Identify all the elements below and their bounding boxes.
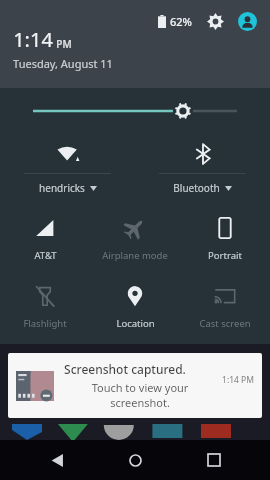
button[interactable]: Flashlight (0, 270, 90, 338)
staticText: 1:14 PM (222, 374, 254, 386)
staticText: AT&T (34, 249, 57, 262)
button[interactable]: Recent apps (192, 440, 236, 480)
staticText: Screenshot captured. (64, 361, 186, 377)
button[interactable]: AT&T (0, 202, 90, 270)
staticText: Touch to view your screenshot. (64, 380, 216, 410)
button[interactable]: Portrait (180, 202, 270, 270)
button[interactable]: Brightness (0, 88, 270, 134)
button[interactable]: Screenshot captured. (8, 353, 262, 418)
button[interactable]: Location (90, 270, 180, 338)
staticText: Location (116, 317, 155, 330)
staticText: PM (56, 37, 72, 51)
staticText: hendricks (39, 181, 85, 195)
button[interactable]: Airplane mode (90, 202, 180, 270)
staticText: Tuesday, August 11 (13, 56, 113, 71)
staticText: Cast screen (199, 317, 251, 330)
button[interactable]: Bluetooth (135, 134, 270, 202)
staticText: 1:14 (13, 26, 53, 53)
staticText: Portrait (208, 249, 242, 262)
staticText: Bluetooth (173, 181, 220, 195)
button[interactable]: Settings (204, 10, 226, 32)
button[interactable]: hendricks (0, 134, 135, 202)
button[interactable]: Back (35, 440, 79, 480)
button[interactable]: Home (113, 440, 157, 480)
staticText: Flashlight (23, 317, 67, 330)
staticText: Airplane mode (102, 249, 168, 262)
button[interactable]: 1:14 (13, 26, 113, 71)
button[interactable]: User account (236, 10, 258, 32)
staticText: 62% (170, 14, 192, 29)
button[interactable]: Cast screen (180, 270, 270, 338)
